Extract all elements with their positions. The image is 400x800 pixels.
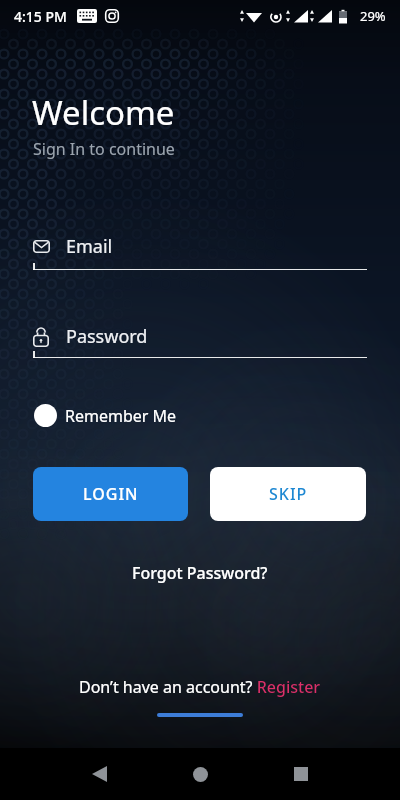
staticText: Remember Me bbox=[65, 405, 177, 427]
button[interactable] bbox=[186, 760, 214, 788]
button[interactable]: Remember Me bbox=[34, 404, 177, 427]
button[interactable]: Email bbox=[33, 234, 367, 259]
button[interactable]: Password bbox=[33, 324, 367, 349]
button[interactable] bbox=[287, 760, 315, 788]
button[interactable]: LOGIN bbox=[33, 467, 188, 521]
staticText: 4:15 PM bbox=[14, 7, 67, 26]
staticText: Sign In to continue bbox=[33, 138, 175, 160]
staticText: LOGIN bbox=[83, 483, 139, 505]
button[interactable] bbox=[85, 760, 113, 788]
staticText: Password bbox=[66, 324, 148, 349]
staticText: Welcome bbox=[32, 90, 175, 135]
button[interactable]: Forgot Password? bbox=[132, 562, 268, 584]
button[interactable]: Don’t have an account? Register bbox=[79, 676, 321, 698]
staticText: SKIP bbox=[269, 483, 308, 505]
button[interactable]: SKIP bbox=[210, 467, 366, 521]
staticText: 29% bbox=[360, 7, 386, 25]
staticText: Email bbox=[66, 234, 113, 259]
